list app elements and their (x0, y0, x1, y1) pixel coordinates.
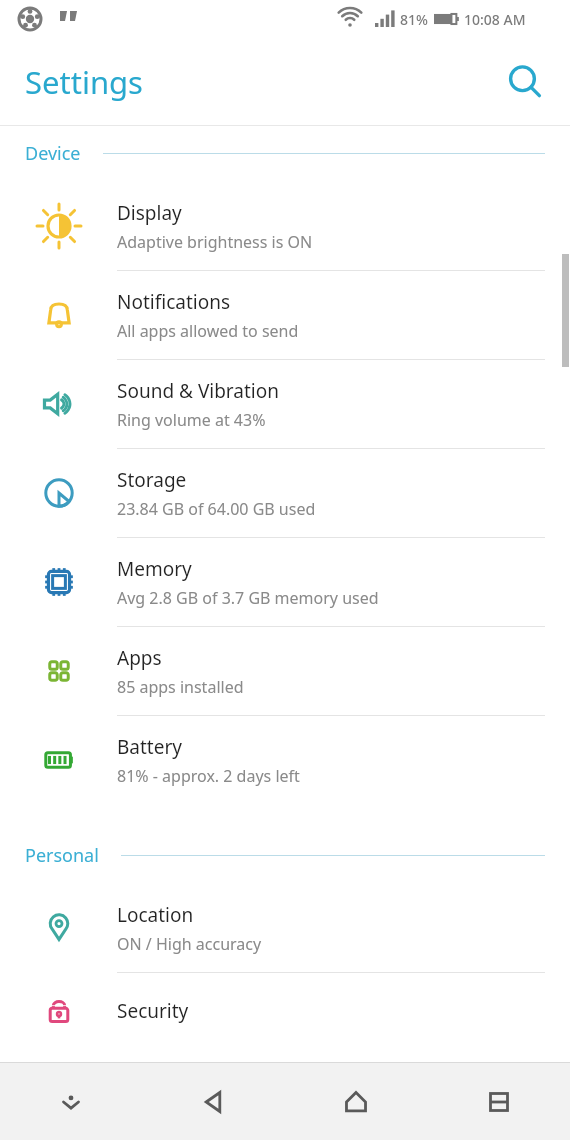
button[interactable]: Notifications (0, 271, 570, 360)
staticText: Sound & Vibration (117, 378, 279, 404)
staticText: Notifications (117, 289, 231, 315)
button[interactable]: Memory (0, 538, 570, 627)
staticText: Apps (117, 645, 162, 671)
staticText: Personal (25, 843, 99, 868)
staticText: All apps allowed to send (117, 320, 299, 342)
button[interactable]: Recent apps (427, 1063, 570, 1140)
button[interactable]: Storage (0, 449, 570, 538)
button[interactable]: Display (0, 182, 570, 271)
staticText: Memory (117, 556, 192, 582)
button[interactable]: Back (142, 1063, 284, 1140)
button[interactable]: Apps (0, 627, 570, 716)
staticText: Display (117, 200, 182, 226)
staticText: Security (117, 998, 189, 1024)
staticText: 10:08 AM (464, 10, 526, 29)
button[interactable]: Home (284, 1063, 427, 1140)
button[interactable]: Sound & Vibration (0, 360, 570, 449)
button[interactable]: Hide navigation bar (0, 1063, 142, 1140)
staticText: 23.84 GB of 64.00 GB used (117, 498, 316, 520)
staticText: Settings (25, 61, 143, 103)
button[interactable]: Security (0, 973, 570, 1049)
staticText: Avg 2.8 GB of 3.7 GB memory used (117, 587, 379, 609)
staticText: Device (25, 141, 81, 166)
staticText: ON / High accuracy (117, 933, 262, 955)
staticText: Storage (117, 467, 187, 493)
staticText: 81% - approx. 2 days left (117, 765, 300, 787)
staticText: Adaptive brightness is ON (117, 231, 313, 253)
staticText: 85 apps installed (117, 676, 244, 698)
button[interactable]: Location (0, 884, 570, 973)
staticText: Battery (117, 734, 182, 760)
button[interactable]: Search (497, 54, 553, 110)
staticText: Location (117, 902, 194, 928)
staticText: Ring volume at 43% (117, 409, 266, 431)
button[interactable]: Battery (0, 716, 570, 804)
staticText: 81% (400, 10, 428, 29)
